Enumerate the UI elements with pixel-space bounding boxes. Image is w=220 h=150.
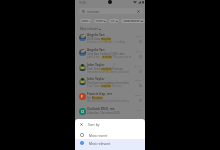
staticText: Jan 12 — [134, 64, 142, 67]
button[interactable]: reunion — [79, 8, 143, 14]
staticText: 2 — [113, 63, 115, 67]
staticText: 19/01 — [135, 108, 142, 111]
button[interactable]: John Taylor — [75, 61, 145, 76]
staticText: We are looking forward to seeing you! Ye… — [87, 99, 132, 103]
button[interactable]: Close — [75, 119, 145, 130]
button[interactable]: Angela Tan — [75, 46, 145, 61]
staticText: You have an invitation from John Taylor — [87, 81, 135, 85]
staticText: Jan 3 — [136, 49, 142, 52]
button[interactable]: Clear search — [137, 10, 140, 13]
staticText: Fwd: Team reunion Pictures — [87, 84, 132, 88]
staticText: John Taylor — [87, 77, 127, 81]
other: Close — [80, 123, 83, 126]
staticText: John Taylor — [87, 63, 113, 67]
button[interactable]: F — [75, 90, 145, 105]
staticText: plan & tak - reunion This year we're — [87, 55, 132, 59]
staticText: Francis Gap, me — [87, 92, 127, 96]
button[interactable]: From — [94, 19, 107, 23]
staticText: Calendar: Christmas 2025 — [87, 111, 135, 115]
staticText: Angela Tan — [87, 33, 127, 37]
staticText: 10 Dec — [134, 78, 142, 81]
button[interactable]: Label — [80, 19, 92, 23]
staticText: reunion — [87, 9, 100, 14]
staticText: Jan 1 — [136, 34, 142, 37]
staticText: Outlook DNU, me — [87, 107, 127, 111]
staticText: Attachment — [124, 19, 140, 23]
button[interactable]: Star — [139, 84, 142, 87]
staticText: Most recent — [89, 133, 108, 137]
staticText: O — [81, 109, 85, 114]
button[interactable]: Star — [139, 40, 142, 43]
staticText: Most relevant — [89, 141, 111, 145]
staticText: Re: Reunion — [87, 96, 135, 100]
staticText: To — [111, 19, 115, 23]
button[interactable]: Most recent — [75, 130, 145, 139]
staticText: 20/01 — [135, 93, 142, 96]
staticText: Sort by — [88, 122, 100, 127]
button[interactable]: O — [75, 105, 145, 120]
button[interactable]: John Taylor — [75, 75, 145, 90]
button[interactable]: Most relevant — [75, 138, 145, 147]
staticText: 9:30 — [79, 0, 86, 5]
staticText: the download has been collected/allowed … — [87, 70, 132, 74]
staticText: Most relevant — [80, 27, 98, 31]
button[interactable]: Star — [139, 55, 142, 58]
staticText: F — [81, 94, 84, 99]
button[interactable]: Most relevant — [80, 27, 101, 31]
staticText: Angela Tan — [87, 48, 127, 52]
button[interactable]: To — [109, 19, 119, 23]
button[interactable]: Star — [139, 70, 142, 73]
button[interactable]: Angela Tan — [75, 31, 145, 46]
staticText: 2025 class reunion — [87, 37, 135, 41]
button[interactable]: Attachment — [121, 19, 145, 23]
staticText: Only Nasi Padang! 2025 class reunion — [87, 52, 135, 56]
staticText: From — [96, 19, 103, 23]
button[interactable]: Star — [139, 99, 142, 102]
staticText: Label — [81, 19, 89, 23]
staticText: Fwd: Team reunion Pictures — [87, 67, 135, 71]
staticText: It's time to celebrate - Looking forward… — [87, 40, 132, 44]
